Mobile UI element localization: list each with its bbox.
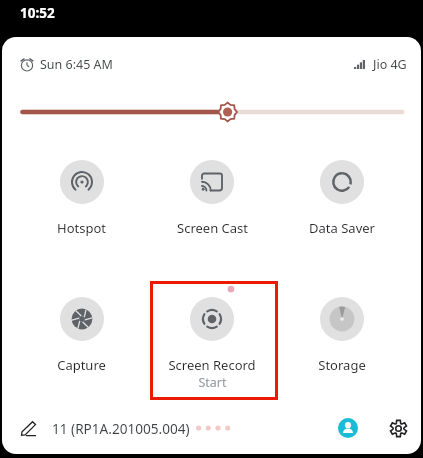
staticText: Jio 4G xyxy=(373,56,407,73)
staticText: 10:52 xyxy=(20,4,55,22)
staticText: Hotspot xyxy=(57,219,106,237)
button[interactable]: Hotspot xyxy=(16,160,147,237)
button[interactable]: Edit xyxy=(18,418,38,438)
button[interactable]: Data Saver xyxy=(277,160,407,237)
staticText: 11 (RP1A.201005.004) xyxy=(52,419,190,438)
staticText: Start xyxy=(198,374,227,391)
button[interactable]: Account xyxy=(338,418,358,438)
staticText: Sun 6:45 AM xyxy=(40,56,113,73)
staticText: Capture xyxy=(57,356,106,374)
button[interactable]: Capture xyxy=(16,297,147,374)
button[interactable]: Screen Record xyxy=(147,297,277,391)
staticText: Storage xyxy=(318,356,366,374)
staticText: Screen Cast xyxy=(177,219,248,237)
button[interactable]: Storage xyxy=(277,297,407,374)
button[interactable]: Settings xyxy=(388,418,408,438)
staticText: Data Saver xyxy=(309,219,375,237)
button[interactable]: Screen Cast xyxy=(147,160,277,237)
staticText: Screen Record xyxy=(168,356,256,374)
